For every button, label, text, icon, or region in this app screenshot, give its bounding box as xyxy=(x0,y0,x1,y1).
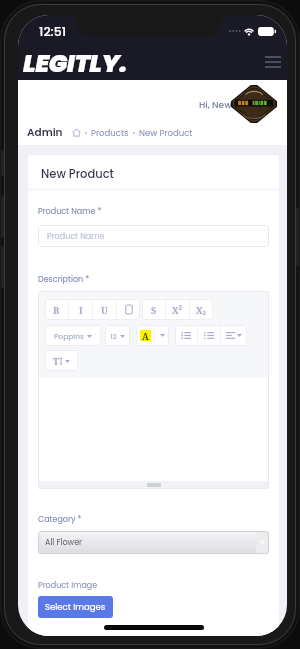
button[interactable]: I xyxy=(69,299,92,320)
staticText: S xyxy=(151,304,157,316)
button[interactable]: 12 xyxy=(105,325,130,346)
button[interactable]: Bulleted list xyxy=(175,325,197,346)
button[interactable]: Paragraph alignment xyxy=(221,325,247,346)
button[interactable]: Text highlight colour xyxy=(136,325,154,346)
staticText: T xyxy=(53,355,59,367)
button[interactable]: X₂ xyxy=(190,299,213,320)
button[interactable]: Poppins xyxy=(45,325,101,346)
staticText: New Product xyxy=(41,166,114,182)
button[interactable]: U xyxy=(93,299,116,320)
staticText: I xyxy=(79,304,83,316)
staticText: Description * xyxy=(38,274,90,285)
staticText: Category * xyxy=(38,514,82,525)
button[interactable]: S xyxy=(142,299,165,320)
staticText: Product Name xyxy=(47,231,105,242)
staticText: 12:51 xyxy=(39,23,67,40)
button[interactable]: Select Images xyxy=(38,596,113,618)
staticText: A xyxy=(142,330,149,341)
staticText: X₂ xyxy=(196,304,207,316)
button[interactable]: X² xyxy=(166,299,189,320)
staticText: Select Images xyxy=(45,601,106,613)
button[interactable]: All Flower xyxy=(38,531,269,554)
button[interactable]: Products xyxy=(91,127,129,139)
button[interactable]: Open navigation menu xyxy=(257,48,287,76)
staticText: Poppins xyxy=(54,331,84,341)
staticText: New Product xyxy=(139,127,193,139)
button[interactable]: Line height xyxy=(45,350,78,371)
staticText: B xyxy=(53,304,60,316)
staticText: Hi, New xyxy=(199,99,232,112)
staticText: 12 xyxy=(110,331,117,341)
staticText: LEGITLY. xyxy=(23,46,127,81)
staticText: All Flower xyxy=(45,537,83,548)
staticText: X² xyxy=(172,304,183,316)
button[interactable]: B xyxy=(45,299,68,320)
button[interactable]: Numbered list xyxy=(198,325,220,346)
staticText: Product Name * xyxy=(38,206,102,217)
button[interactable]: More colours xyxy=(155,325,169,346)
staticText: Product Image xyxy=(38,580,98,591)
staticText: Admin xyxy=(27,125,63,140)
button[interactable]: Insert link xyxy=(117,299,140,320)
staticText: U xyxy=(101,304,108,316)
button[interactable]: Product Name xyxy=(38,225,269,247)
